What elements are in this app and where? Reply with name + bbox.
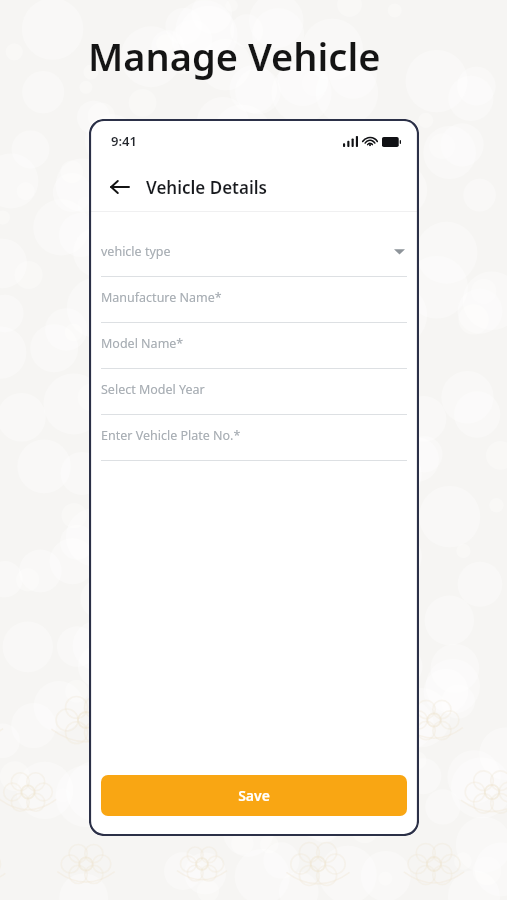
- staticText: Manufacture Name*: [101, 289, 222, 306]
- button[interactable]: Back: [103, 170, 137, 204]
- button[interactable]: vehicle type: [101, 231, 407, 277]
- staticText: Manage Vehicle: [88, 30, 381, 82]
- staticText: vehicle type: [101, 243, 171, 260]
- staticText: Save: [238, 786, 270, 805]
- button[interactable]: Save: [101, 775, 407, 816]
- staticText: 9:41: [111, 132, 137, 150]
- button[interactable]: Manufacture Name*: [101, 277, 407, 323]
- button[interactable]: Select Model Year: [101, 369, 407, 415]
- button[interactable]: Model Name*: [101, 323, 407, 369]
- staticText: Select Model Year: [101, 381, 205, 398]
- staticText: Vehicle Details: [146, 176, 267, 199]
- button[interactable]: Enter Vehicle Plate No.*: [101, 415, 407, 461]
- staticText: Model Name*: [101, 335, 184, 352]
- staticText: Enter Vehicle Plate No.*: [101, 427, 241, 444]
